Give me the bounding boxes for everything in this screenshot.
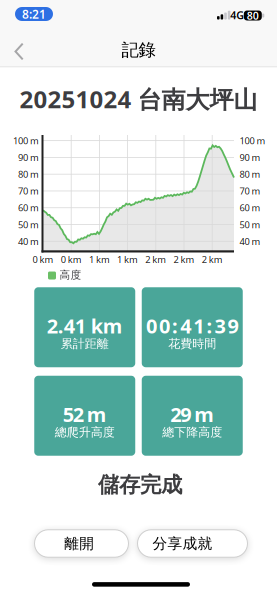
staticText: 2.41 km bbox=[47, 312, 123, 339]
staticText: 0 km bbox=[32, 253, 53, 266]
button[interactable]: 分享成就 bbox=[137, 530, 247, 557]
staticText: 100 m bbox=[13, 134, 39, 147]
staticText: 1 km bbox=[117, 253, 138, 266]
staticText: 花費時間 bbox=[168, 336, 216, 351]
staticText: 50 m bbox=[239, 218, 260, 231]
staticText: 20251024 台南大坪山 bbox=[19, 83, 257, 115]
staticText: 累計距離 bbox=[61, 336, 109, 351]
staticText: 100 m bbox=[239, 134, 265, 147]
staticText: 00:41:39 bbox=[146, 312, 239, 339]
staticText: 1 km bbox=[89, 253, 110, 266]
staticText: 50 m bbox=[18, 218, 39, 231]
button[interactable]: 離開 bbox=[34, 530, 128, 557]
staticText: 60 m bbox=[18, 201, 39, 214]
staticText: 2 km bbox=[173, 253, 194, 266]
staticText: 0 km bbox=[61, 253, 82, 266]
button[interactable]: 8:21, return to call bbox=[15, 7, 53, 21]
staticText: 80 m bbox=[18, 168, 39, 180]
staticText: 高度 bbox=[59, 268, 81, 281]
staticText: 4G bbox=[230, 8, 244, 22]
staticText: 2 km bbox=[202, 253, 223, 266]
staticText: 總爬升高度 bbox=[55, 425, 115, 440]
staticText: 60 m bbox=[239, 201, 260, 214]
staticText: 70 m bbox=[18, 185, 39, 197]
staticText: 記錄 bbox=[121, 39, 155, 61]
staticText: 儲存完成 bbox=[98, 472, 182, 498]
staticText: 40 m bbox=[239, 235, 260, 247]
staticText: 離開 bbox=[64, 534, 94, 552]
staticText: 分享成就 bbox=[152, 534, 212, 552]
staticText: 29 m bbox=[170, 401, 214, 428]
staticText: 2 km bbox=[145, 253, 166, 266]
staticText: 52 m bbox=[63, 401, 107, 428]
staticText: 8:21 bbox=[22, 6, 46, 22]
staticText: 90 m bbox=[18, 151, 39, 164]
staticText: 70 m bbox=[239, 185, 260, 197]
staticText: 90 m bbox=[239, 151, 260, 164]
staticText: 40 m bbox=[18, 235, 39, 247]
staticText: 總下降高度 bbox=[162, 425, 222, 440]
staticText: 80 bbox=[247, 8, 259, 23]
button[interactable]: Back bbox=[10, 43, 30, 60]
staticText: 80 m bbox=[239, 168, 260, 180]
